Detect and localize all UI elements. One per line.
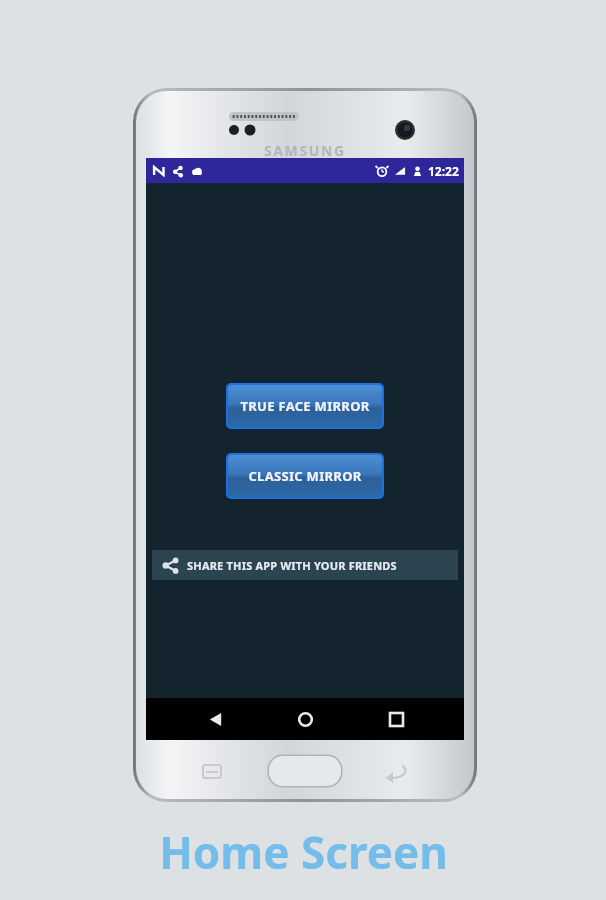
button[interactable]: Recents <box>374 698 418 740</box>
button[interactable]: Home <box>283 698 327 740</box>
staticText: SAMSUNG <box>264 141 346 160</box>
button[interactable]: CLASSIC MIRROR <box>228 455 382 497</box>
staticText: CLASSIC MIRROR <box>248 467 362 485</box>
button[interactable]: Back <box>193 698 237 740</box>
other: Share this app <box>162 557 179 574</box>
button[interactable]: TRUE FACE MIRROR <box>228 385 382 427</box>
staticText: Home Screen <box>159 822 448 882</box>
staticText: SHARE THIS APP WITH YOUR FRIENDS <box>187 558 397 573</box>
button[interactable]: Share this app <box>152 550 458 580</box>
staticText: TRUE FACE MIRROR <box>240 397 370 415</box>
staticText: 12:22 <box>428 163 459 179</box>
